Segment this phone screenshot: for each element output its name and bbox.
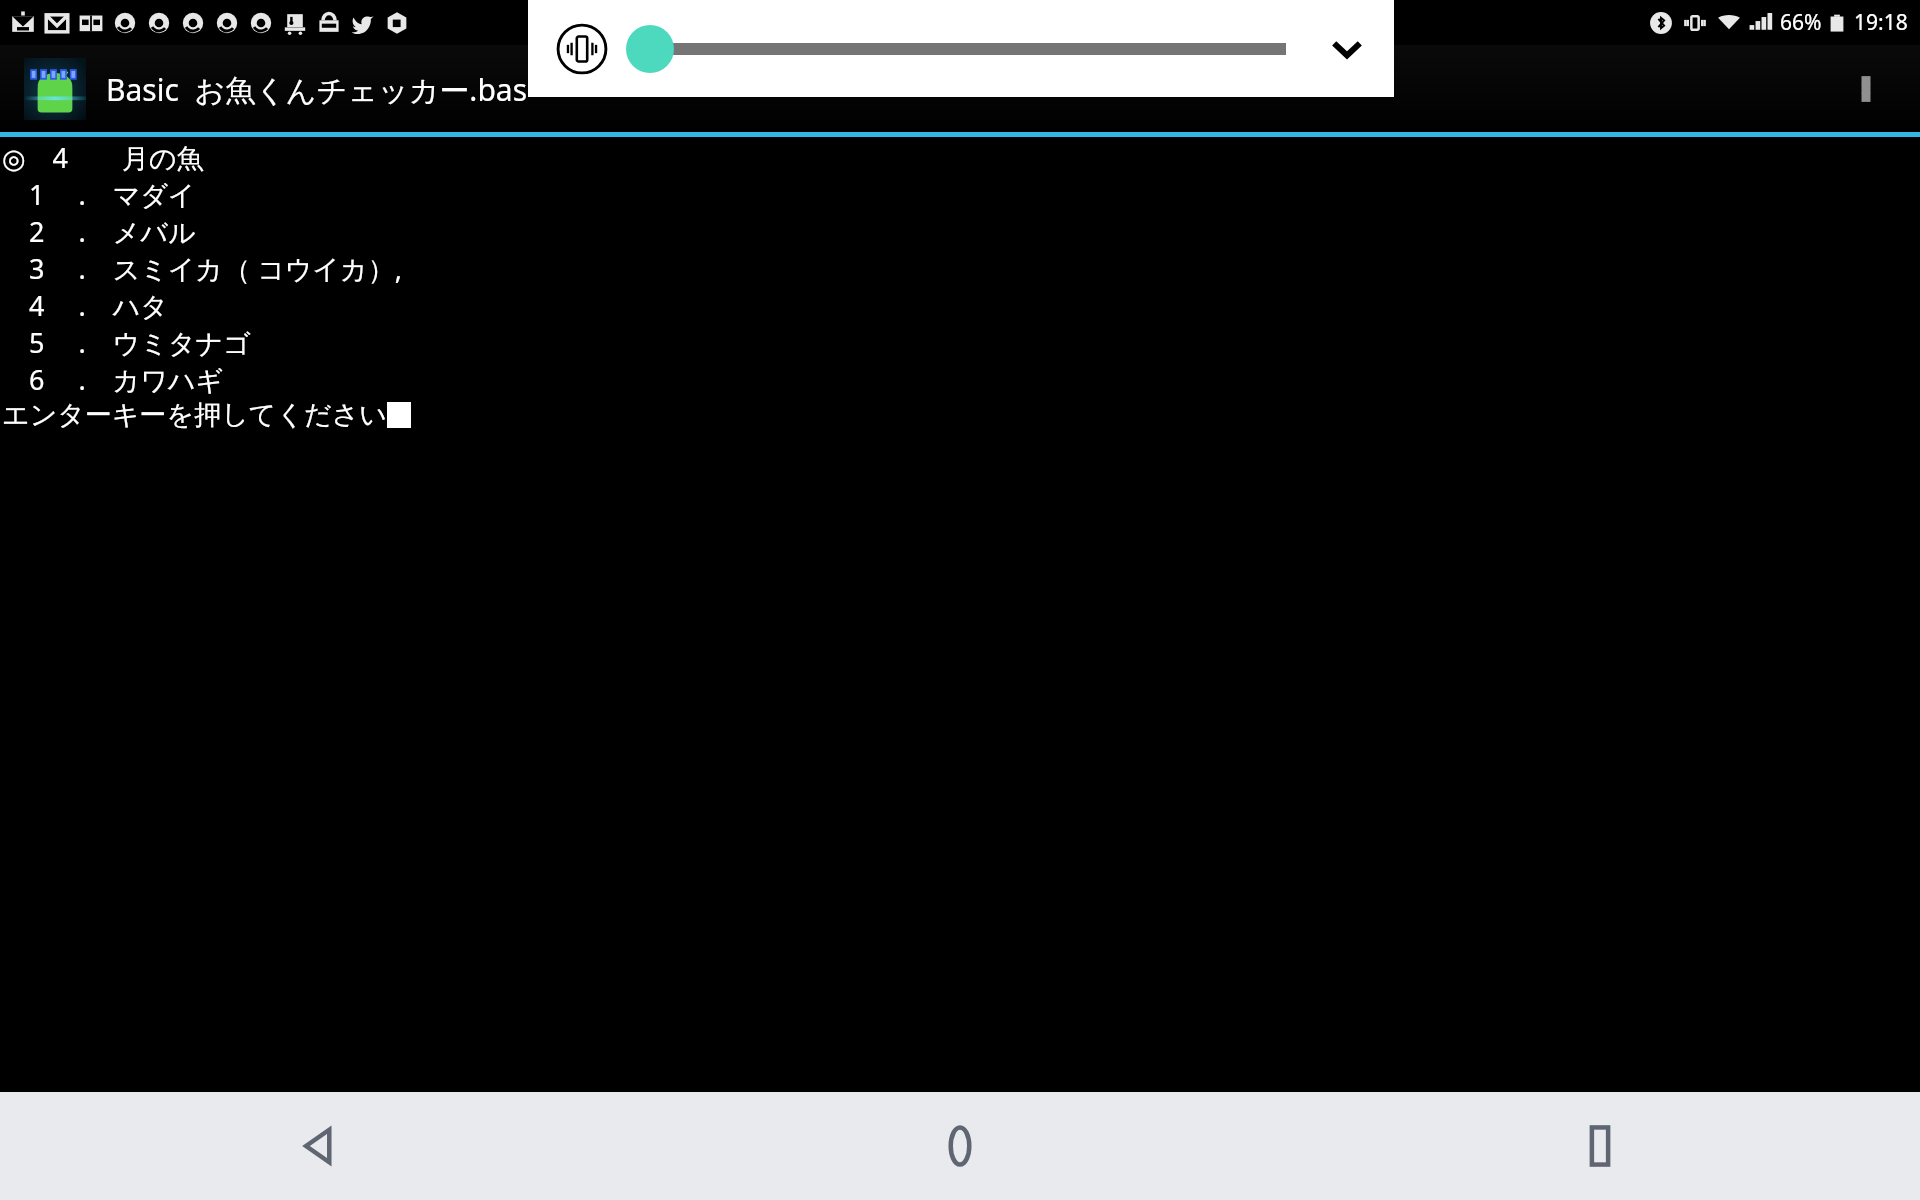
staticText: 3 . スミイカ（ コウイカ）, <box>2 250 403 287</box>
staticText: 19:18 <box>1854 8 1908 37</box>
button[interactable]: Home <box>640 1092 1280 1200</box>
button[interactable]: Ringer mode: vibrate <box>554 21 610 77</box>
staticText: Basic お魚くんチェッカー.bas <box>106 69 528 110</box>
button[interactable]: Recent apps <box>1280 1092 1920 1200</box>
staticText: 2 . メバル <box>2 213 196 250</box>
staticText: 1 . マダイ <box>2 176 196 213</box>
button[interactable]: Back <box>0 1092 640 1200</box>
button[interactable]: Expand volume controls <box>1316 18 1378 80</box>
staticText: 66% <box>1780 8 1822 37</box>
button[interactable] <box>624 21 1290 77</box>
staticText: ◎ 4 月の魚 <box>2 139 204 176</box>
staticText: 6 . カワハギ <box>2 361 224 398</box>
button[interactable]: More options <box>1842 65 1890 113</box>
staticText: 5 . ウミタナゴ <box>2 324 251 361</box>
staticText: 4 . ハタ <box>2 287 168 324</box>
staticText: エンターキーを押してください <box>2 398 387 432</box>
